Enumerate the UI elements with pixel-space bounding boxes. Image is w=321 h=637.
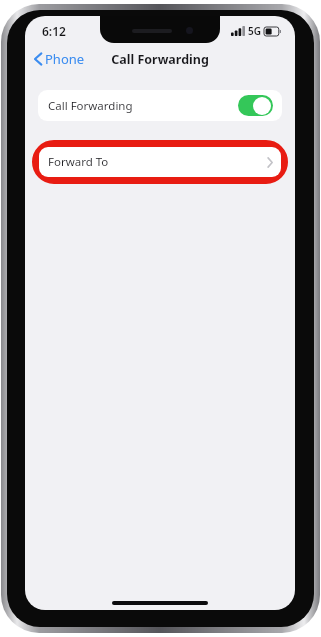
button[interactable]: Forward To: [39, 147, 281, 177]
staticText: Call Forwarding: [48, 98, 133, 114]
staticText: Forward To: [48, 154, 109, 170]
staticText: Call Forwarding: [111, 51, 209, 68]
button[interactable]: Phone: [25, 47, 91, 71]
button[interactable]: Call Forwarding toggle, on: [238, 95, 273, 116]
staticText: 5G: [248, 24, 261, 38]
staticText: Phone: [45, 50, 85, 68]
staticText: 6:12: [42, 23, 66, 39]
button[interactable]: Call Forwarding: [38, 90, 282, 121]
